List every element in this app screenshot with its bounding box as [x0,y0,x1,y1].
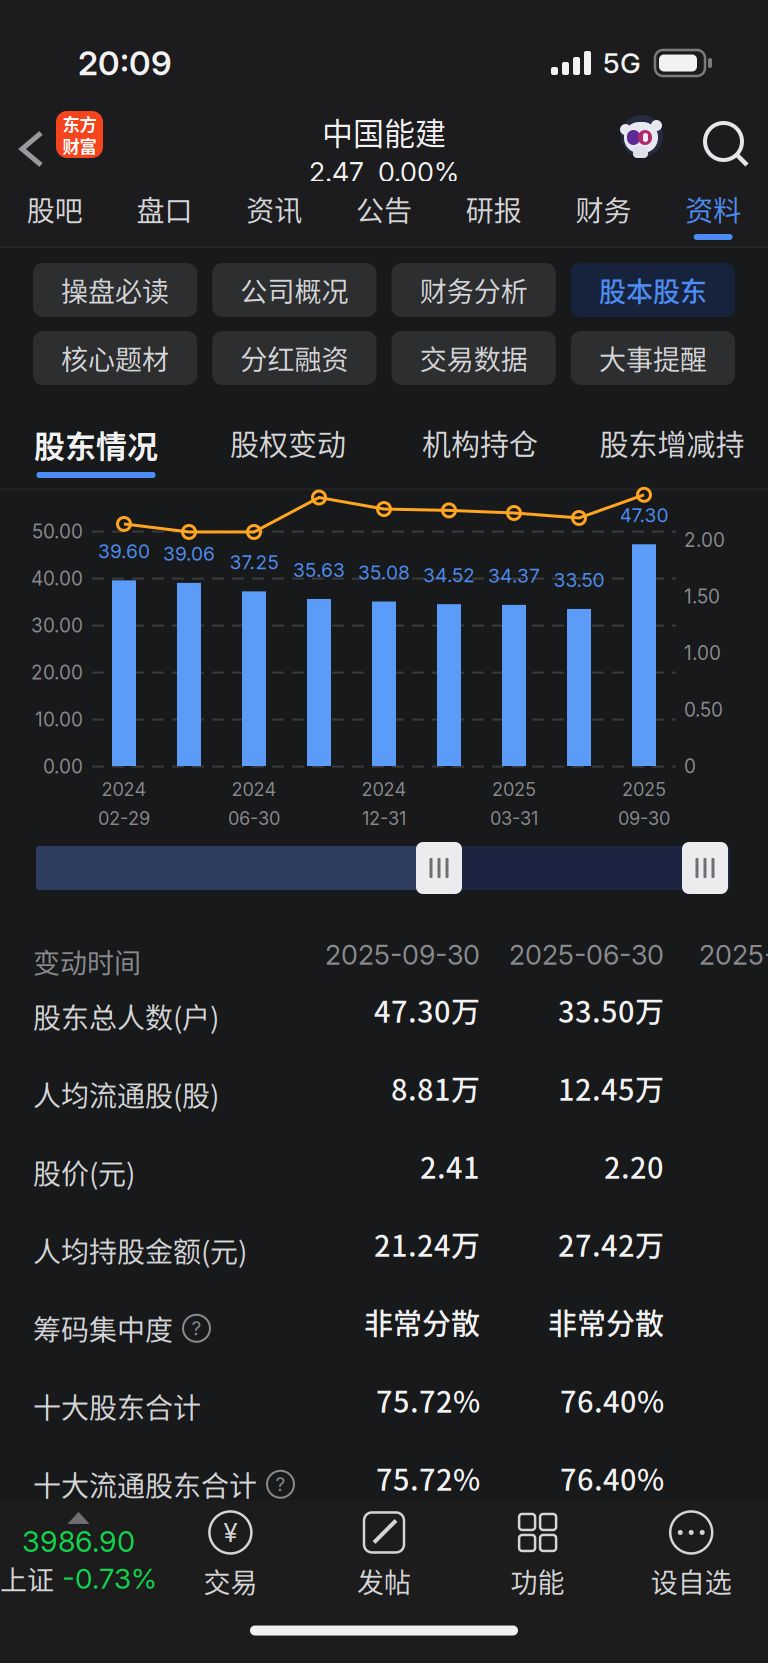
staticText: 35.63 [293,558,345,582]
button[interactable]: 财务分析 [391,263,556,317]
button[interactable]: 核心题材 [33,331,197,385]
staticText: 35.08 [358,561,410,584]
staticText: 设自选 [651,1561,732,1601]
staticText: 75.72% [376,1379,480,1421]
staticText: 交易 [203,1561,257,1601]
button[interactable]: 交易数据 [391,331,556,385]
button[interactable]: 财务 [549,181,658,248]
button[interactable]: 功能 [461,1509,614,1601]
staticText: 盘口 [137,189,193,229]
staticText: 2024 [361,778,406,800]
staticText: 27.42万 [558,1223,664,1265]
staticText: 股本股东 [599,270,707,310]
staticText: 03-31 [490,807,538,829]
staticText: 12-31 [362,807,406,829]
staticText: 33.50万 [558,989,664,1031]
staticText: 37.25 [229,551,278,574]
staticText: 上证 [0,1559,54,1598]
staticText: 分红融资 [240,338,348,378]
staticText: 34.37 [488,564,540,587]
staticText: 股权变动 [230,422,346,464]
staticText: 76.40% [560,1379,664,1421]
staticText: 2024 [231,778,276,800]
button[interactable]: 操盘必读 [33,263,197,317]
staticText: 2025-06-30 [509,939,664,971]
staticText: 非常分散 [364,1301,480,1343]
staticText: 股东总人数(户) [33,996,219,1036]
button[interactable]: 起始 [0,830,46,882]
staticText: 2.47 0.00% [309,156,459,189]
staticText: 0.50 [684,698,723,721]
staticText: 0 [684,755,696,778]
staticText: 股东增减持 [599,422,744,464]
staticText: 操盘必读 [61,270,169,310]
button[interactable]: 发帖 [307,1509,461,1601]
staticText: 5G [603,46,641,80]
button[interactable]: 股东情况 [0,400,192,490]
staticText: 股价(元) [33,1152,135,1192]
staticText: 2025 [622,778,666,800]
button[interactable]: 股权变动 [192,400,384,490]
staticText: 1.00 [684,642,721,665]
staticText: 47.30 [619,504,668,527]
staticText: 非常分散 [548,1301,664,1343]
staticText: 公告 [356,189,412,229]
button[interactable]: AI助手 [615,111,663,159]
button[interactable]: 资料 [658,181,768,248]
staticText: ? [275,1473,285,1496]
button[interactable]: 结束 [0,830,46,882]
staticText: 东方 [62,111,96,136]
staticText: 20.00 [31,661,83,684]
button[interactable]: 设自选 [614,1509,768,1601]
button[interactable]: ¥ [154,1509,307,1601]
staticText: 交易数据 [420,338,528,378]
staticText: 2.20 [604,1145,664,1187]
staticText: 财务 [575,189,631,229]
staticText: 资讯 [246,189,302,229]
staticText: 机构持仓 [422,422,538,464]
button[interactable]: 盘口 [110,181,219,248]
staticText: 30.00 [31,614,83,637]
button[interactable]: 股吧 [0,181,110,248]
staticText: 1.50 [684,585,720,608]
staticText: 09-30 [618,807,670,829]
button[interactable]: 分红融资 [212,331,376,385]
staticText: 大事提醒 [599,338,707,378]
staticText: 21.24万 [374,1223,480,1265]
button[interactable]: 返回 [4,119,60,179]
staticText: 十大流通股东合计 [33,1464,257,1504]
staticText: 02-29 [98,807,150,829]
staticText: 筹码集中度 [33,1308,173,1348]
staticText: 33.50 [553,568,604,591]
staticText: 人均流通股(股) [33,1074,219,1114]
staticText: 0.00 [43,755,83,778]
staticText: 06-30 [228,807,280,829]
button[interactable]: 3986.90 [0,1512,154,1598]
button[interactable]: 股东增减持 [576,400,768,490]
staticText: 股吧 [27,189,83,229]
staticText: 资料 [685,189,741,229]
button[interactable]: 资讯 [219,181,329,248]
button[interactable]: 东方财富 [56,111,103,158]
staticText: 3986.90 [22,1524,135,1559]
staticText: 财富 [62,133,96,158]
staticText: ¥ [223,1517,237,1548]
staticText: 2.41 [420,1145,480,1187]
button[interactable]: 公司概况 [212,263,376,317]
button[interactable]: 研报 [439,181,549,248]
staticText: 12.45万 [558,1067,664,1109]
button[interactable]: 公告 [329,181,439,248]
staticText: 2024 [101,778,146,800]
button[interactable]: 机构持仓 [384,400,576,490]
staticText: 功能 [511,1561,565,1601]
staticText: 2025 [492,778,536,800]
staticText: 核心题材 [61,338,169,378]
staticText: 39.60 [98,540,150,563]
button[interactable]: 大事提醒 [571,331,735,385]
button[interactable]: 搜索 [698,120,758,180]
button[interactable]: 股本股东 [571,263,735,317]
staticText: ? [191,1317,201,1340]
staticText: 40.00 [31,567,83,590]
staticText: -0.73% [62,1562,157,1595]
staticText: 34.52 [423,564,475,587]
